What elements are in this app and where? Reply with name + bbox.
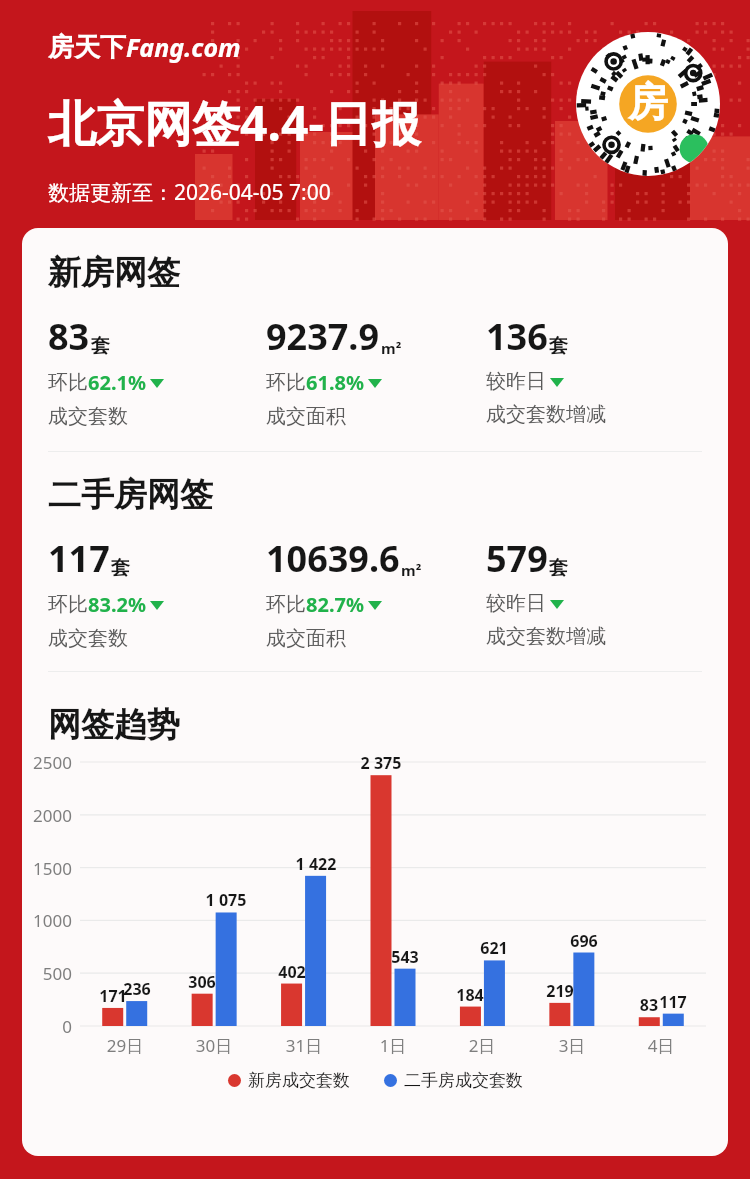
staticText: 成交面积 [266, 404, 346, 429]
staticText: 696 [554, 930, 614, 952]
staticText: 2日 [452, 1034, 512, 1057]
staticText: 二手房成交套数 [404, 1070, 523, 1091]
staticText: 数据更新至：2026-04-05 7:00 [48, 178, 331, 207]
staticText: 236 [107, 978, 167, 1000]
staticText: 136 [486, 312, 548, 361]
staticText: 环比 [266, 370, 306, 395]
staticText: 房 [628, 77, 668, 127]
staticText: 环比 [266, 592, 306, 617]
staticText: 4日 [631, 1034, 691, 1057]
button[interactable]: 扫码二维码 [576, 32, 720, 176]
staticText: 83 [619, 994, 679, 1016]
button[interactable]: 136 [486, 312, 702, 427]
button[interactable]: 117 [48, 534, 266, 651]
staticText: 500 [22, 962, 72, 985]
staticText: 2000 [22, 804, 72, 827]
staticText: 较昨日 [486, 591, 546, 616]
staticText: 北京网签4.4-日报 [48, 90, 420, 156]
button[interactable]: 二手房成交套数 [384, 1070, 523, 1091]
staticText: 83 [48, 312, 90, 361]
staticText: 543 [375, 946, 435, 968]
staticText: 套 [549, 334, 568, 358]
staticText: 套 [549, 556, 568, 580]
staticText: 82.7% [306, 591, 364, 618]
staticText: 306 [172, 971, 232, 993]
staticText: 579 [486, 534, 548, 583]
staticText: m² [401, 560, 422, 580]
button[interactable]: 83 [48, 312, 266, 429]
button[interactable]: 579 [486, 534, 702, 649]
button[interactable]: 新房成交套数 [228, 1070, 350, 1091]
staticText: 成交套数增减 [486, 624, 606, 649]
staticText: 房天下 [48, 31, 126, 64]
staticText: 219 [530, 980, 590, 1002]
staticText: 成交套数 [48, 626, 128, 651]
staticText: 621 [464, 937, 524, 959]
staticText: 3日 [542, 1034, 602, 1057]
staticText: 117 [643, 991, 703, 1013]
staticText: 环比 [48, 370, 88, 395]
staticText: 62.1% [88, 369, 146, 396]
staticText: 成交套数增减 [486, 402, 606, 427]
staticText: 1 075 [196, 889, 256, 911]
staticText: 二手房网签 [48, 474, 213, 516]
staticText: 30日 [184, 1034, 244, 1057]
staticText: 1500 [22, 857, 72, 880]
staticText: 成交套数 [48, 404, 128, 429]
staticText: 10639.6 [266, 534, 400, 583]
button[interactable]: 10639.6 [266, 534, 486, 651]
staticText: 套 [111, 556, 130, 580]
staticText: 1 422 [286, 853, 346, 875]
staticText: m² [381, 338, 402, 358]
staticText: 套 [91, 334, 110, 358]
staticText: 61.8% [306, 369, 364, 396]
staticText: 0 [22, 1015, 72, 1038]
staticText: 较昨日 [486, 369, 546, 394]
staticText: 1日 [363, 1034, 423, 1057]
staticText: Fang.com [126, 30, 241, 64]
staticText: 1000 [22, 909, 72, 932]
staticText: 117 [48, 534, 110, 583]
staticText: 184 [440, 984, 500, 1006]
staticText: 83.2% [88, 591, 146, 618]
staticText: 9237.9 [266, 312, 380, 361]
staticText: 171 [83, 985, 143, 1007]
staticText: 402 [262, 961, 322, 983]
staticText: 新房网签 [48, 252, 180, 294]
button[interactable]: 9237.9 [266, 312, 486, 429]
staticText: 环比 [48, 592, 88, 617]
staticText: 2 375 [351, 752, 411, 774]
staticText: 31日 [274, 1034, 334, 1057]
staticText: 新房成交套数 [248, 1070, 350, 1091]
staticText: 成交面积 [266, 626, 346, 651]
staticText: 29日 [95, 1034, 155, 1057]
staticText: 网签趋势 [48, 704, 180, 746]
staticText: 2500 [22, 751, 72, 774]
